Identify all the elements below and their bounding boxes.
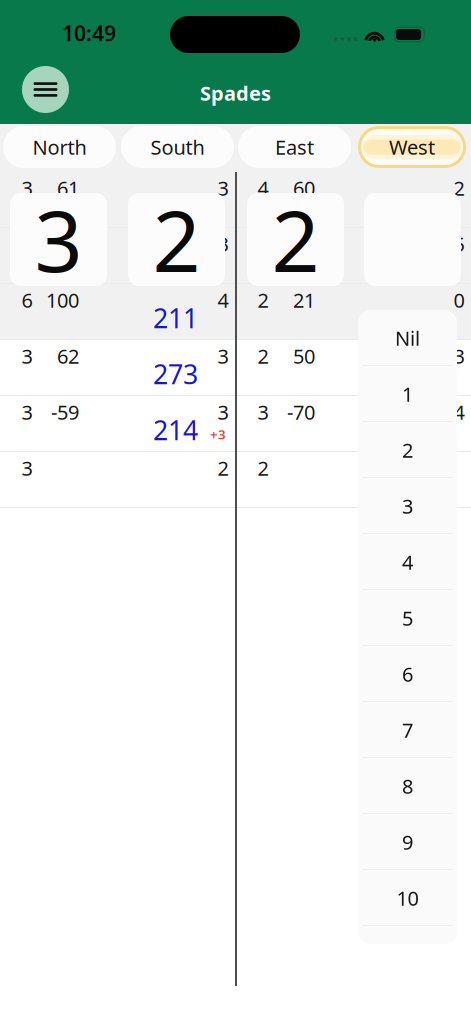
button[interactable]: West bbox=[358, 126, 466, 168]
button[interactable]: North bbox=[3, 126, 116, 168]
staticText: 3 bbox=[21, 175, 32, 201]
staticText: 214 bbox=[153, 412, 198, 448]
staticText: South bbox=[150, 134, 204, 160]
button[interactable]: 3 bbox=[358, 478, 457, 534]
staticText: West bbox=[389, 134, 435, 160]
staticText: 3 bbox=[217, 231, 228, 257]
staticText: 2 bbox=[453, 175, 464, 201]
staticText: 3 bbox=[257, 399, 268, 425]
button[interactable]: 5 bbox=[358, 590, 457, 646]
staticText: 4 bbox=[402, 549, 413, 575]
staticText: +3 bbox=[210, 425, 226, 443]
staticText: 4 bbox=[453, 399, 464, 425]
staticText: 10 bbox=[396, 885, 418, 911]
button[interactable]: 9 bbox=[358, 814, 457, 870]
staticText: 62 bbox=[57, 343, 79, 369]
button[interactable]: 6 bbox=[358, 646, 457, 702]
button[interactable]: Menu bbox=[22, 66, 69, 113]
staticText: 61 bbox=[57, 175, 79, 201]
staticText: 273 bbox=[153, 356, 198, 392]
staticText: -70 bbox=[287, 399, 315, 425]
staticText: 50 bbox=[293, 343, 315, 369]
staticText: 5 bbox=[402, 605, 413, 631]
staticText: 2 bbox=[271, 184, 319, 295]
button[interactable]: East bbox=[238, 126, 351, 168]
staticText: 3 bbox=[34, 184, 82, 295]
staticText: 3 bbox=[453, 343, 464, 369]
staticText: 100 bbox=[46, 287, 79, 313]
staticText: 3 bbox=[217, 343, 228, 369]
staticText: 2 bbox=[257, 455, 268, 481]
staticText: Spades bbox=[200, 80, 271, 106]
staticText: 21 bbox=[293, 287, 315, 313]
staticText: 8 bbox=[402, 773, 413, 799]
staticText: 3 bbox=[217, 175, 228, 201]
staticText: 60 bbox=[293, 175, 315, 201]
staticText: 2 bbox=[152, 184, 200, 295]
staticText: 3 bbox=[21, 399, 32, 425]
staticText: 9 bbox=[402, 829, 413, 855]
button[interactable]: South bbox=[121, 126, 234, 168]
staticText: 6 bbox=[21, 287, 32, 313]
staticText: 2 bbox=[217, 455, 228, 481]
button[interactable]: 1 bbox=[358, 366, 457, 422]
button[interactable]: 2 bbox=[358, 422, 457, 478]
staticText: North bbox=[32, 134, 86, 160]
staticText: 0 bbox=[453, 287, 464, 313]
staticText: 1 bbox=[402, 381, 413, 407]
staticText: -59 bbox=[51, 399, 79, 425]
button[interactable]: 7 bbox=[358, 702, 457, 758]
staticText: 3 bbox=[402, 493, 413, 519]
staticText: East bbox=[275, 134, 314, 160]
staticText: 211 bbox=[153, 300, 198, 336]
staticText: 10:49 bbox=[62, 19, 116, 47]
staticText: Nil bbox=[395, 325, 420, 351]
staticText: 7 bbox=[402, 717, 413, 743]
staticText: 4 bbox=[217, 287, 228, 313]
button[interactable]: Nil bbox=[358, 310, 457, 366]
staticText: 2 bbox=[257, 343, 268, 369]
staticText: 4 bbox=[257, 175, 268, 201]
staticText: 3 bbox=[21, 343, 32, 369]
staticText: 6 bbox=[402, 661, 413, 687]
staticText: 3 bbox=[217, 399, 228, 425]
staticText: 5 bbox=[453, 231, 464, 257]
staticText: 3 bbox=[21, 455, 32, 481]
button[interactable]: 4 bbox=[358, 534, 457, 590]
button[interactable]: 8 bbox=[358, 758, 457, 814]
button[interactable]: 10 bbox=[358, 870, 457, 926]
staticText: 2 bbox=[257, 287, 268, 313]
staticText: 2 bbox=[402, 437, 413, 463]
